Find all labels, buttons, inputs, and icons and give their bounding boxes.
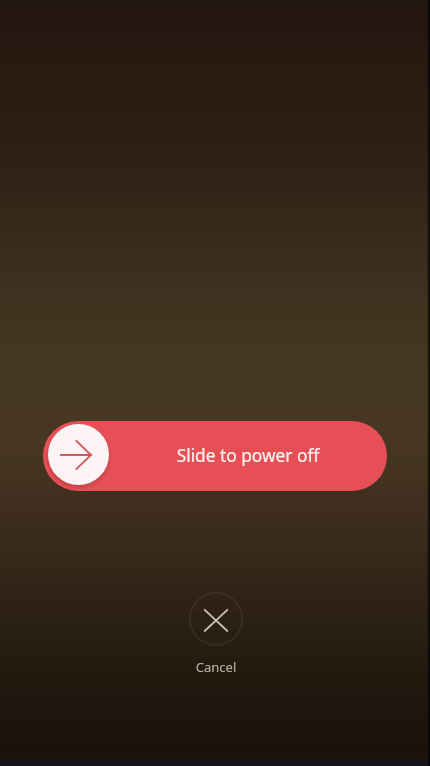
staticText: Slide to power off	[137, 444, 359, 468]
staticText: Cancel	[188, 658, 244, 676]
button[interactable]: Slide to power off	[48, 424, 109, 485]
button[interactable]: Slide to power off	[43, 421, 387, 491]
button[interactable]: Cancel	[188, 592, 244, 676]
